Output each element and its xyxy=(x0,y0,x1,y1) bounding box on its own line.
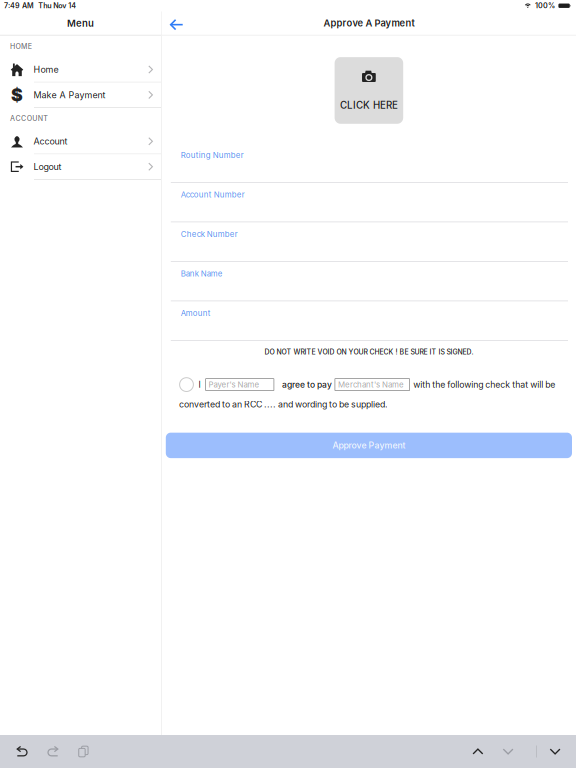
staticText: converted to an RCC .... and wording to … xyxy=(179,399,388,410)
staticText: $ xyxy=(11,84,23,106)
staticText: Routing Number xyxy=(181,150,244,160)
button[interactable]: Previous field xyxy=(466,742,489,761)
staticText: 7:49 AM xyxy=(4,1,34,10)
staticText: Merchant's Name xyxy=(338,380,404,389)
staticText: Make A Payment xyxy=(34,89,106,100)
staticText: agree to pay xyxy=(282,379,332,390)
staticText: with the following check that will be xyxy=(413,379,555,390)
button[interactable]: Paste xyxy=(72,740,94,763)
staticText: DO NOT WRITE VOID ON YOUR CHECK ! BE SUR… xyxy=(264,348,473,356)
button[interactable]: $ xyxy=(0,83,161,107)
staticText: Approve A Payment xyxy=(323,17,414,29)
staticText: Logout xyxy=(34,161,62,172)
button[interactable]: Undo xyxy=(10,740,34,763)
staticText: Amount xyxy=(181,308,211,318)
staticText: ACCOUNT xyxy=(10,114,48,123)
button[interactable]: Home xyxy=(0,57,161,82)
staticText: Account xyxy=(34,136,68,147)
staticText: I xyxy=(199,379,201,390)
button[interactable]: Approve Payment xyxy=(162,433,576,458)
button[interactable]: Account xyxy=(0,129,161,154)
button[interactable]: Back xyxy=(162,11,192,36)
staticText: Check Number xyxy=(181,229,238,239)
staticText: Menu xyxy=(67,17,94,29)
staticText: CLICK HERE xyxy=(340,99,398,111)
staticText: Account Number xyxy=(181,190,245,199)
staticText: Bank Name xyxy=(181,269,223,278)
button[interactable]: Next field xyxy=(496,742,520,761)
staticText: Thu Nov 14 xyxy=(38,1,76,10)
staticText: Approve Payment xyxy=(332,440,405,451)
staticText: Home xyxy=(34,64,59,75)
staticText: HOME xyxy=(10,42,32,51)
button[interactable]: Dismiss keyboard xyxy=(543,742,567,761)
button[interactable]: Logout xyxy=(0,154,161,179)
staticText: 100% xyxy=(535,1,555,10)
staticText: Payer's Name xyxy=(209,380,260,389)
button[interactable]: Redo xyxy=(41,740,65,763)
button[interactable]: CLICK HERE xyxy=(335,57,403,124)
